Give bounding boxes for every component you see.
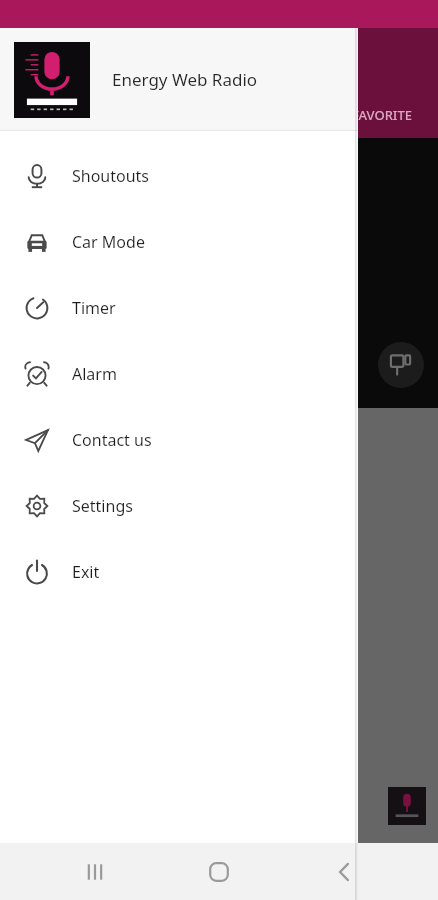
staticText: Contact us — [72, 429, 152, 451]
staticText: Shoutouts — [72, 165, 150, 187]
button[interactable]: Settings — [0, 473, 358, 539]
button[interactable]: Recent apps — [65, 843, 125, 900]
button[interactable]: Now playing artwork — [388, 787, 426, 825]
button[interactable]: Dislike — [378, 342, 424, 388]
button[interactable]: Car Mode — [0, 209, 358, 275]
button[interactable]: Timer — [0, 275, 358, 341]
button[interactable]: Back — [314, 843, 374, 900]
staticText: Car Mode — [72, 231, 145, 253]
button[interactable]: Home — [189, 843, 249, 900]
staticText: Timer — [72, 297, 116, 319]
button[interactable]: Contact us — [0, 407, 358, 473]
button[interactable]: Shoutouts — [0, 143, 358, 209]
button[interactable]: Exit — [0, 539, 358, 605]
staticText: FAVORITE — [352, 106, 413, 124]
staticText: Settings — [72, 495, 133, 517]
button[interactable]: Energy Web Radio — [0, 28, 358, 131]
staticText: Alarm — [72, 363, 117, 385]
button[interactable]: Alarm — [0, 341, 358, 407]
staticText: Exit — [72, 561, 100, 583]
staticText: Energy Web Radio — [112, 68, 258, 91]
